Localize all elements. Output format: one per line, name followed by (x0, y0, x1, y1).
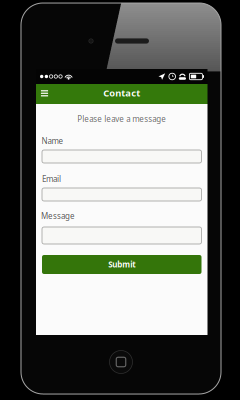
staticText: Email (42, 174, 61, 184)
button[interactable]: Menu (36, 83, 53, 103)
staticText: Message (41, 211, 75, 221)
staticText: Submit (108, 259, 135, 270)
staticText: Name (41, 136, 63, 146)
staticText: Contact (103, 87, 140, 99)
button[interactable]: Submit (42, 255, 201, 274)
staticText: Please leave a message (77, 114, 166, 124)
